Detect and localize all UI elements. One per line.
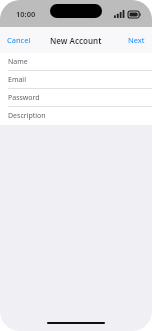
staticText: Email (8, 75, 26, 85)
staticText: Description (8, 111, 46, 121)
staticText: Name (8, 57, 28, 67)
staticText: Next (128, 35, 145, 45)
button[interactable]: Name (0, 53, 152, 71)
button[interactable]: Email (0, 71, 152, 89)
staticText: Cancel (7, 35, 31, 45)
button[interactable]: Cancel (0, 30, 38, 50)
staticText: Password (8, 93, 40, 103)
staticText: 10:00 (16, 9, 36, 19)
staticText: New Account (50, 35, 102, 46)
button[interactable]: Password (0, 89, 152, 107)
button[interactable]: Description (0, 107, 152, 125)
button[interactable]: Next (121, 30, 152, 50)
